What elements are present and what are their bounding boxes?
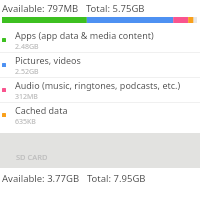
- staticText: SD CARD: [16, 152, 48, 162]
- button[interactable]: Cached data: [0, 103, 200, 127]
- staticText: Audio (music, ringtones, podcasts, etc.): [15, 79, 181, 91]
- staticText: Apps (app data & media content): [15, 29, 154, 41]
- staticText: 635KB: [15, 117, 36, 127]
- staticText: Total: 7.95GB: [87, 172, 146, 185]
- staticText: 312MB: [15, 92, 38, 102]
- staticText: Cached data: [15, 104, 68, 116]
- staticText: 2.52GB: [15, 67, 39, 77]
- staticText: Pictures, videos: [15, 54, 81, 66]
- staticText: 2.48GB: [15, 42, 39, 52]
- staticText: Available: 797MB: [2, 2, 79, 15]
- button[interactable]: Apps (app data & media content): [0, 28, 200, 52]
- button[interactable]: Audio (music, ringtones, podcasts, etc.): [0, 78, 200, 102]
- staticText: Total: 5.75GB: [86, 2, 145, 15]
- button[interactable]: Pictures, videos: [0, 53, 200, 77]
- staticText: Available: 3.77GB: [2, 172, 80, 185]
